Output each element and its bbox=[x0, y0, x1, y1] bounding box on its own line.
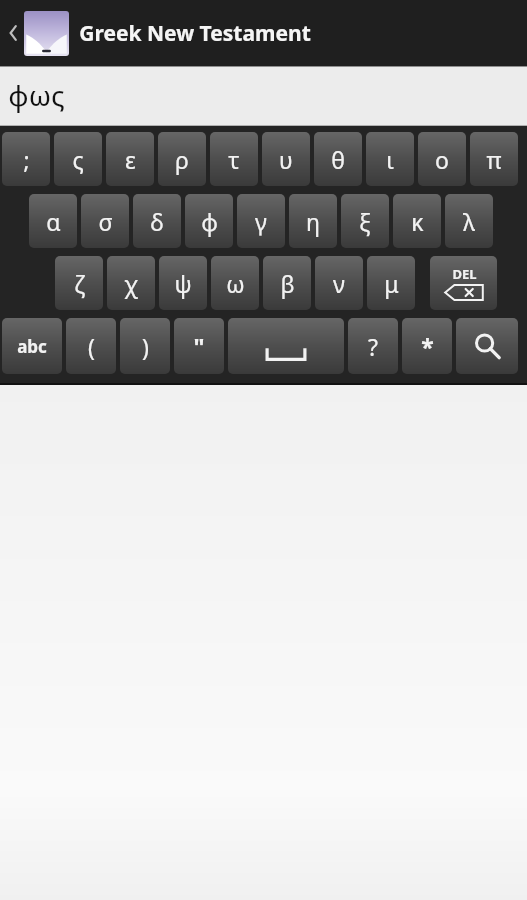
staticText: σ bbox=[98, 206, 113, 237]
button[interactable]: β bbox=[263, 256, 311, 310]
staticText: ε bbox=[125, 144, 136, 175]
staticText: * bbox=[421, 331, 434, 362]
staticText: τ bbox=[228, 144, 240, 175]
staticText: δ bbox=[150, 206, 164, 237]
staticText: θ bbox=[331, 144, 345, 175]
button[interactable]: ω bbox=[211, 256, 259, 310]
button[interactable]: " bbox=[174, 318, 224, 374]
staticText: κ bbox=[411, 206, 424, 237]
staticText: ζ bbox=[74, 268, 85, 299]
button[interactable]: Space bbox=[228, 318, 344, 374]
button[interactable]: π bbox=[470, 132, 518, 186]
staticText: DEL bbox=[452, 265, 477, 283]
staticText: υ bbox=[279, 144, 293, 175]
staticText: ς bbox=[72, 144, 84, 175]
button[interactable]: δ bbox=[133, 194, 181, 248]
button[interactable]: σ bbox=[81, 194, 129, 248]
button[interactable]: Search bbox=[456, 318, 518, 374]
staticText: π bbox=[486, 144, 502, 175]
button[interactable]: ι bbox=[366, 132, 414, 186]
button[interactable]: τ bbox=[210, 132, 258, 186]
button[interactable]: ? bbox=[348, 318, 398, 374]
staticText: ) bbox=[142, 331, 149, 362]
button[interactable]: ρ bbox=[158, 132, 206, 186]
button[interactable]: App icon bbox=[24, 11, 69, 56]
staticText: abc bbox=[17, 335, 47, 358]
staticText: ν bbox=[333, 268, 345, 299]
button[interactable]: ζ bbox=[55, 256, 103, 310]
staticText: γ bbox=[255, 206, 267, 237]
staticText: β bbox=[280, 268, 295, 299]
staticText: φ bbox=[201, 206, 218, 237]
button[interactable]: γ bbox=[237, 194, 285, 248]
button[interactable]: φως bbox=[0, 66, 527, 126]
button[interactable]: λ bbox=[445, 194, 493, 248]
button[interactable]: ψ bbox=[159, 256, 207, 310]
staticText: λ bbox=[463, 206, 475, 237]
staticText: ξ bbox=[359, 206, 371, 237]
button[interactable]: α bbox=[29, 194, 77, 248]
button[interactable]: υ bbox=[262, 132, 310, 186]
button[interactable]: χ bbox=[107, 256, 155, 310]
button[interactable]: φ bbox=[185, 194, 233, 248]
staticText: ω bbox=[226, 268, 245, 299]
staticText: α bbox=[46, 206, 61, 237]
staticText: η bbox=[306, 206, 320, 237]
button[interactable]: abc bbox=[2, 318, 62, 374]
staticText: ? bbox=[368, 331, 378, 362]
button[interactable]: * bbox=[402, 318, 452, 374]
button[interactable]: ε bbox=[106, 132, 154, 186]
staticText: ( bbox=[88, 331, 95, 362]
button[interactable]: ν bbox=[315, 256, 363, 310]
staticText: χ bbox=[124, 268, 138, 299]
button[interactable]: ξ bbox=[341, 194, 389, 248]
button[interactable]: μ bbox=[367, 256, 415, 310]
button[interactable]: κ bbox=[393, 194, 441, 248]
button[interactable]: ο bbox=[418, 132, 466, 186]
staticText: ι bbox=[386, 144, 394, 175]
staticText: " bbox=[193, 331, 205, 362]
button[interactable]: Back bbox=[4, 0, 22, 66]
button[interactable]: Delete bbox=[430, 256, 497, 310]
staticText: ο bbox=[435, 144, 449, 175]
staticText: ψ bbox=[174, 268, 192, 299]
staticText: ; bbox=[23, 144, 30, 175]
button[interactable]: ) bbox=[120, 318, 170, 374]
button[interactable]: ς bbox=[54, 132, 102, 186]
staticText: Greek New Testament bbox=[79, 19, 311, 48]
button[interactable]: ; bbox=[2, 132, 50, 186]
button[interactable]: θ bbox=[314, 132, 362, 186]
staticText: φως bbox=[8, 76, 65, 114]
button[interactable]: η bbox=[289, 194, 337, 248]
button[interactable]: ( bbox=[66, 318, 116, 374]
staticText: μ bbox=[384, 268, 399, 299]
staticText: ρ bbox=[175, 144, 189, 175]
